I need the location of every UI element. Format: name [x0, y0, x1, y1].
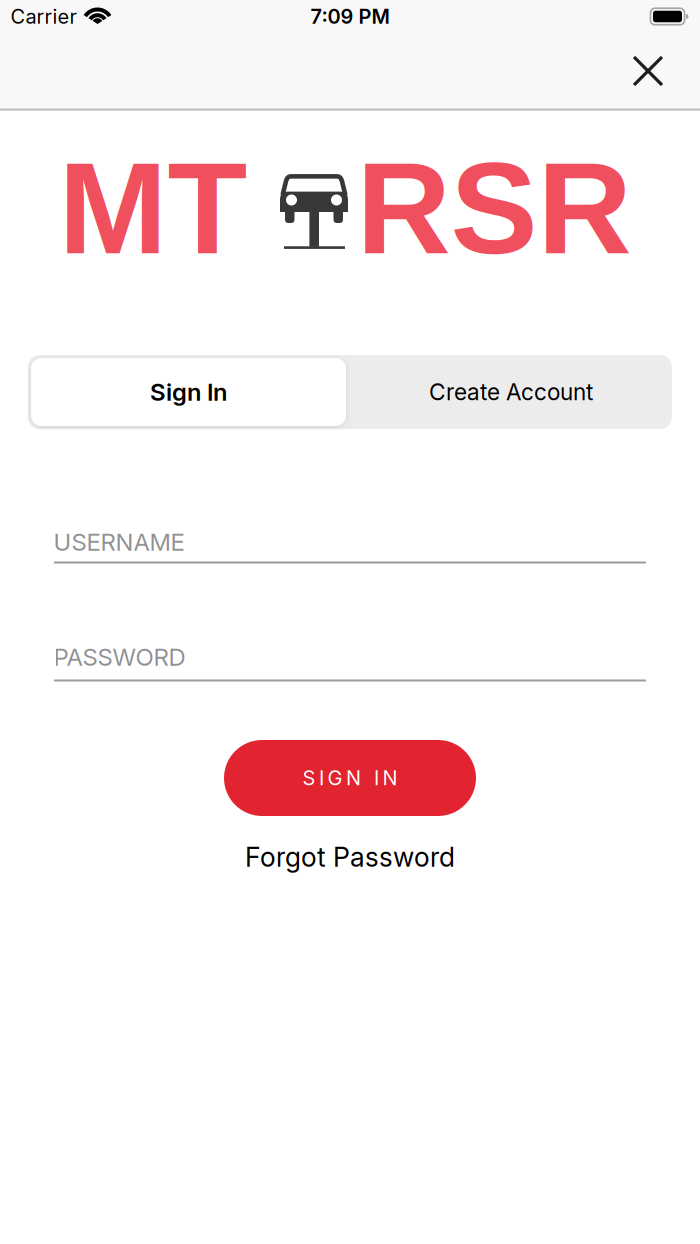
button[interactable]: Forgot Password: [245, 841, 455, 873]
button[interactable]: Create Account: [350, 358, 672, 426]
staticText: Carrier: [10, 5, 76, 28]
button[interactable]: Sign In: [31, 358, 346, 426]
staticText: 7:09 PM: [310, 5, 389, 28]
staticText: PASSWORD: [53, 643, 185, 671]
staticText: USERNAME: [53, 528, 184, 556]
button[interactable]: SIGN IN: [224, 740, 476, 816]
staticText: Forgot Password: [245, 841, 455, 873]
staticText: RSR: [356, 135, 631, 281]
staticText: Create Account: [429, 379, 593, 405]
staticText: Sign In: [150, 378, 227, 406]
staticText: SIGN IN: [302, 766, 397, 790]
staticText: MT: [58, 135, 247, 281]
button[interactable]: Close: [620, 43, 676, 99]
